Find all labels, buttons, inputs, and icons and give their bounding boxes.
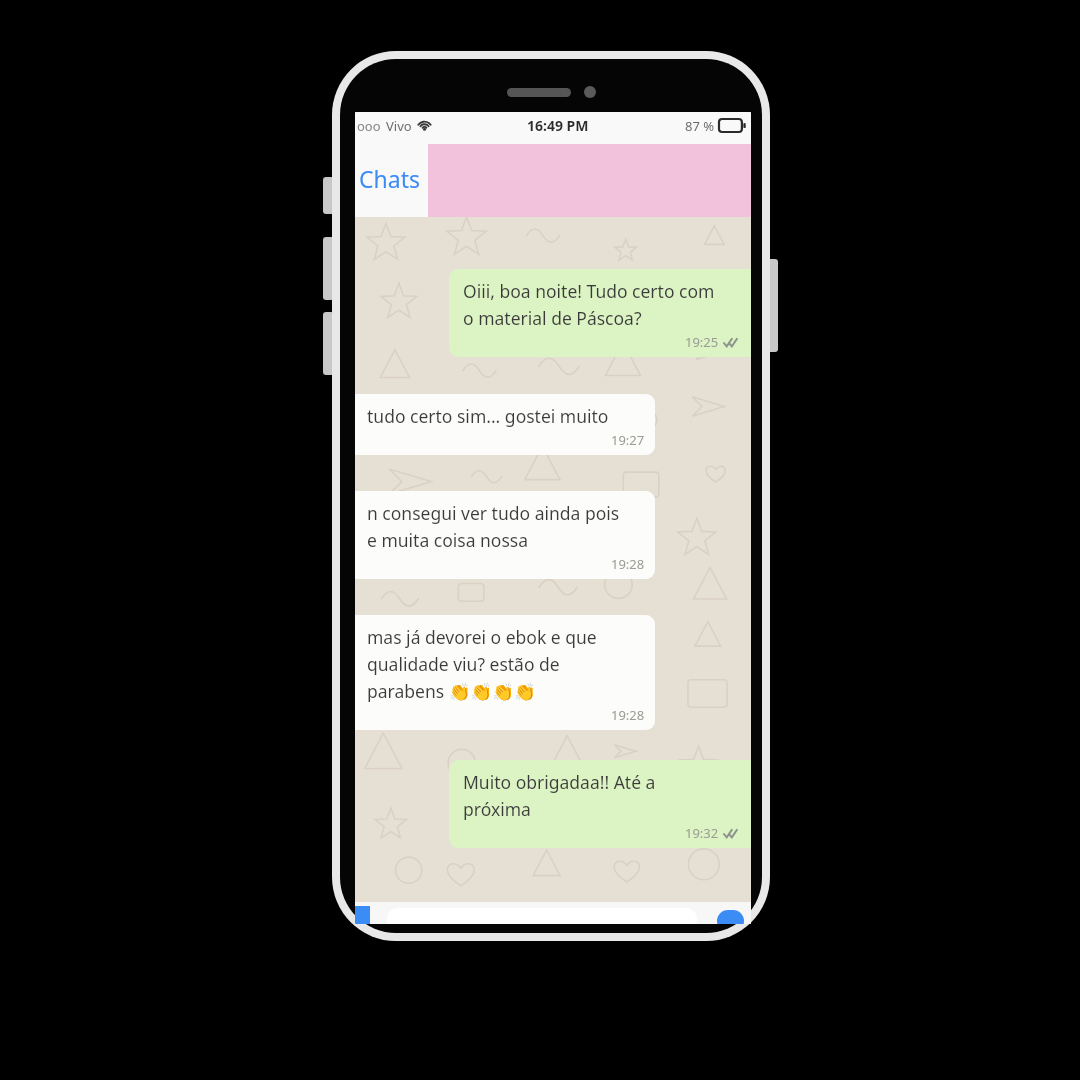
button[interactable]: Send xyxy=(717,910,744,924)
button[interactable]: Silent switch xyxy=(323,177,334,214)
button[interactable]: Muito obrigadaa!! Até a xyxy=(449,760,751,848)
staticText: Vivo xyxy=(386,117,412,135)
staticText: Muito obrigadaa!! Até a xyxy=(463,770,656,794)
staticText: mas já devorei o ebok e que xyxy=(367,625,597,649)
staticText: n consegui ver tudo ainda pois xyxy=(367,501,620,525)
button[interactable]: Volume down xyxy=(323,312,334,375)
staticText: Chats xyxy=(359,163,420,194)
button[interactable]: tudo certo sim... gostei muito xyxy=(355,394,655,455)
staticText: próxima xyxy=(463,797,531,821)
staticText: e muita coisa nossa xyxy=(367,528,529,552)
staticText: 19:28 xyxy=(611,706,645,724)
staticText: 19:28 xyxy=(611,555,645,573)
button[interactable]: Oiii, boa noite! Tudo certo com xyxy=(449,269,751,357)
button[interactable]: mas já devorei o ebok e que xyxy=(355,615,655,730)
staticText: Oiii, boa noite! Tudo certo com xyxy=(463,279,715,303)
button[interactable]: n consegui ver tudo ainda pois xyxy=(355,491,655,579)
staticText: 87 % xyxy=(685,117,715,135)
staticText: parabens 👏👏👏👏 xyxy=(367,679,536,703)
button[interactable]: Chats xyxy=(356,158,423,199)
staticText: 19:25 xyxy=(685,333,719,351)
button[interactable]: Volume up xyxy=(323,237,334,300)
staticText: tudo certo sim... gostei muito xyxy=(367,404,609,428)
staticText: 19:32 xyxy=(685,824,719,842)
button[interactable]: Power xyxy=(767,259,778,352)
staticText: ooo xyxy=(357,117,381,135)
staticText: qualidade viu? estão de xyxy=(367,652,560,676)
staticText: o material de Páscoa? xyxy=(463,306,642,330)
staticText: 16:49 PM xyxy=(527,116,589,135)
staticText: 19:27 xyxy=(611,431,645,449)
